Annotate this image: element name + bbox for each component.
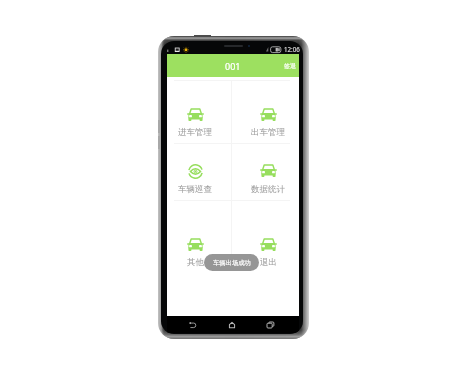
staticText: 退出 [260,257,277,268]
staticText: 进车管理 [178,127,212,138]
staticText: 车辆巡查 [178,184,212,195]
staticText: 001 [225,60,241,72]
button[interactable]: Recent apps [263,318,277,332]
button[interactable]: Home [225,318,239,332]
staticText: 其他 [187,257,204,268]
button[interactable]: 签退 [281,58,299,74]
button[interactable]: 车辆巡查 [162,157,228,199]
staticText: 12:06 [284,45,300,53]
staticText: 车辆出场成功 [213,259,251,267]
button[interactable]: 数据统计 [235,157,301,199]
staticText: 出车管理 [251,127,285,138]
staticText: 签退 [284,62,296,70]
button[interactable]: 退出 [235,231,301,273]
button[interactable]: 出车管理 [235,101,301,143]
button[interactable]: Back [185,318,200,332]
button[interactable]: 其他 [162,231,228,273]
button[interactable]: 进车管理 [162,101,228,143]
staticText: 数据统计 [251,184,285,195]
